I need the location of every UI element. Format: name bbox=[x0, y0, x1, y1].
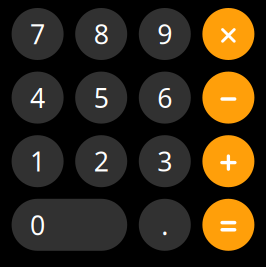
staticText: 1 bbox=[30, 143, 45, 179]
button[interactable]: 8 bbox=[75, 8, 127, 60]
button[interactable]: 6 bbox=[139, 72, 191, 124]
button[interactable]: 9 bbox=[139, 8, 191, 60]
staticText: 6 bbox=[157, 80, 172, 115]
button[interactable]: 2 bbox=[75, 135, 127, 187]
button[interactable]: Decimal point bbox=[139, 199, 191, 251]
button[interactable]: Plus bbox=[202, 135, 254, 187]
button[interactable]: 5 bbox=[75, 72, 127, 124]
staticText: 5 bbox=[94, 80, 109, 115]
button[interactable]: 0 bbox=[12, 199, 127, 251]
staticText: 4 bbox=[30, 80, 45, 115]
button[interactable]: 1 bbox=[12, 135, 64, 187]
staticText: 0 bbox=[30, 207, 45, 242]
button[interactable]: 4 bbox=[12, 72, 64, 124]
staticText: 7 bbox=[30, 16, 45, 52]
button[interactable]: Equals bbox=[202, 199, 254, 251]
button[interactable]: 3 bbox=[139, 135, 191, 187]
staticText: 8 bbox=[94, 16, 109, 52]
button[interactable]: 7 bbox=[12, 8, 64, 60]
staticText: . bbox=[161, 207, 168, 242]
button[interactable]: Minus bbox=[202, 72, 254, 124]
staticText: 2 bbox=[94, 143, 109, 179]
staticText: 9 bbox=[157, 16, 172, 52]
staticText: 3 bbox=[157, 143, 172, 179]
button[interactable]: Multiply bbox=[202, 8, 254, 60]
